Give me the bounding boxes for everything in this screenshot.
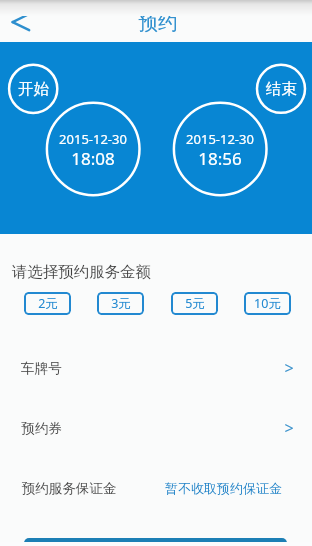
staticText: 暂不收取预约保证金	[165, 480, 282, 496]
button[interactable]: 2元	[24, 292, 71, 315]
staticText: 2015-12-30	[59, 130, 127, 148]
staticText: 结束	[266, 79, 297, 98]
button[interactable]: 车牌号	[0, 338, 312, 398]
staticText: 预约	[119, 10, 197, 35]
button[interactable]: 5元	[171, 292, 218, 315]
staticText: 10元	[254, 295, 281, 312]
staticText: 18:56	[198, 147, 242, 170]
button[interactable]: 结束	[256, 63, 307, 114]
staticText: 请选择预约服务金额	[12, 262, 151, 281]
button[interactable]: 2015-12-30	[172, 101, 268, 197]
staticText: 开始	[18, 79, 49, 98]
button[interactable]: 3元	[97, 292, 144, 315]
button[interactable]: Back	[0, 0, 44, 42]
staticText: >	[284, 417, 294, 439]
button[interactable]: 确认预约	[24, 538, 287, 546]
button[interactable]: 2015-12-30	[45, 101, 141, 197]
staticText: 2元	[38, 295, 58, 312]
button[interactable]: 预约券	[0, 398, 312, 458]
staticText: 18:08	[71, 147, 115, 170]
button[interactable]: 开始	[8, 63, 59, 114]
button[interactable]: 预约服务保证金	[0, 458, 312, 518]
staticText: 2015-12-30	[186, 130, 254, 148]
staticText: 预约服务保证金	[21, 480, 117, 497]
button[interactable]: 10元	[244, 292, 291, 315]
staticText: 预约券	[21, 420, 62, 437]
staticText: 3元	[111, 295, 131, 312]
staticText: 5元	[185, 295, 205, 312]
staticText: >	[284, 357, 294, 379]
staticText: 车牌号	[21, 360, 62, 377]
